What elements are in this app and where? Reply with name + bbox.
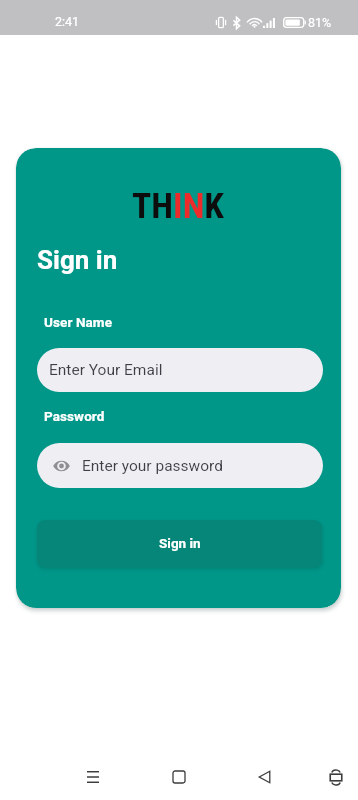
button[interactable]: Show password — [37, 443, 323, 488]
staticText: Enter Your Email — [49, 361, 163, 379]
other: Show password — [52, 457, 70, 475]
button[interactable]: Rotate screen — [314, 755, 358, 799]
button[interactable]: Back — [242, 755, 286, 799]
button[interactable]: Sign in — [37, 520, 322, 568]
staticText: 2:41 — [55, 14, 80, 29]
button[interactable]: Recents — [71, 755, 115, 799]
staticText: Sign in — [159, 535, 201, 551]
button[interactable]: Home — [157, 755, 201, 799]
staticText: Sign in — [37, 245, 118, 275]
staticText: Enter your password — [82, 457, 223, 475]
staticText: 81% — [308, 15, 332, 30]
staticText: THINK — [132, 185, 225, 227]
button[interactable]: Enter Your Email — [37, 348, 323, 392]
staticText: Password — [44, 408, 105, 424]
staticText: User Name — [44, 314, 113, 330]
